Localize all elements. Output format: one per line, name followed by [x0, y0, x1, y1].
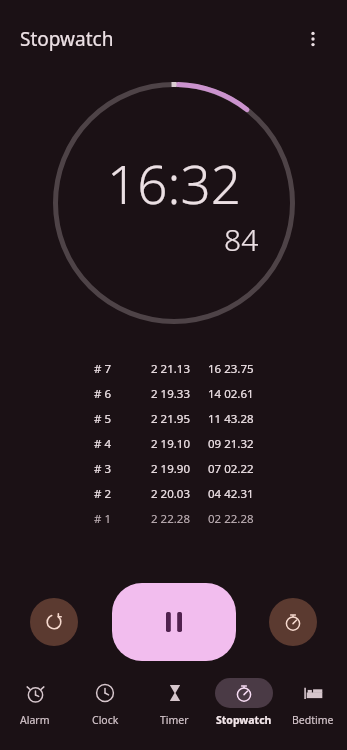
staticText: # 1 [94, 511, 111, 527]
staticText: 11 43.28 [208, 411, 254, 427]
staticText: 16:32 [107, 147, 241, 219]
staticText: Timer [160, 713, 189, 727]
staticText: 04 42.31 [208, 486, 254, 502]
staticText: # 6 [94, 386, 111, 402]
button[interactable]: Timer [140, 670, 209, 750]
staticText: 07 02.22 [208, 461, 254, 477]
staticText: 02 22.28 [208, 511, 254, 527]
button[interactable]: Alarm [0, 670, 70, 750]
button[interactable]: Reset [30, 598, 78, 646]
button[interactable]: Pause [112, 583, 236, 661]
staticText: 2 21.95 [151, 411, 190, 427]
button[interactable]: Clock [70, 670, 140, 750]
staticText: 2 22.28 [151, 511, 190, 527]
staticText: Stopwatch [216, 713, 272, 727]
staticText: # 4 [94, 436, 111, 452]
button[interactable]: More options [293, 19, 333, 59]
button[interactable]: Bedtime [278, 670, 347, 750]
staticText: 2 21.13 [151, 361, 190, 377]
staticText: 16 23.75 [208, 361, 254, 377]
staticText: # 3 [94, 461, 111, 477]
staticText: Stopwatch [20, 26, 114, 52]
staticText: # 2 [94, 486, 111, 502]
staticText: # 7 [94, 361, 111, 377]
staticText: 14 02.61 [208, 386, 254, 402]
staticText: 84 [224, 219, 259, 260]
staticText: Alarm [20, 713, 50, 727]
staticText: 2 19.33 [151, 386, 190, 402]
staticText: 2 19.10 [151, 436, 190, 452]
staticText: 2 20.03 [151, 486, 190, 502]
staticText: 09 21.32 [208, 436, 254, 452]
staticText: Clock [92, 713, 119, 727]
staticText: 2 19.90 [151, 461, 190, 477]
staticText: Bedtime [292, 713, 334, 727]
staticText: # 5 [94, 411, 111, 427]
button[interactable]: Stopwatch [209, 670, 278, 750]
button[interactable]: Lap [269, 598, 317, 646]
